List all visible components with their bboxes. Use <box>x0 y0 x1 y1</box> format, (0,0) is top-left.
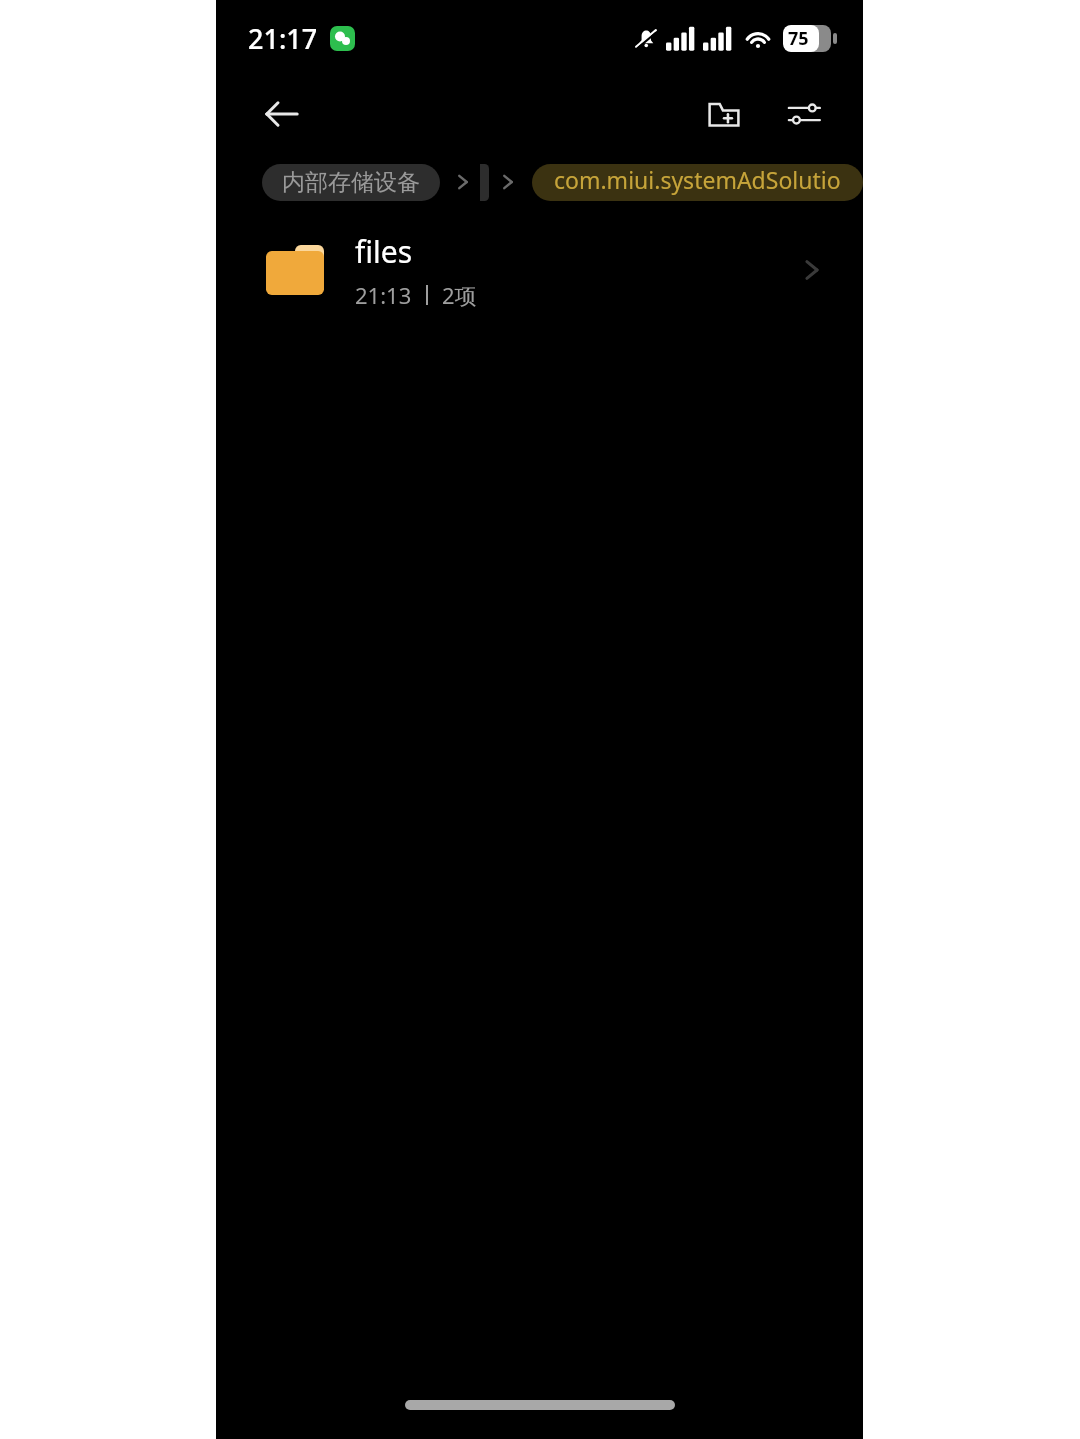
staticText: 75 <box>788 26 809 51</box>
button[interactable]: files <box>216 226 863 314</box>
button[interactable]: Back <box>254 86 310 142</box>
staticText: 21:17 <box>248 20 318 57</box>
button[interactable]: com.miui.systemAdSolution <box>532 164 863 201</box>
staticText: com.miui.systemAdSolution <box>554 164 841 201</box>
staticText: 2项 <box>442 280 477 310</box>
button[interactable]: 内部存储设备 <box>262 164 440 201</box>
button[interactable]: New folder <box>695 85 753 143</box>
staticText: 21:13 <box>355 280 412 310</box>
staticText: 内部存储设备 <box>282 168 420 197</box>
button[interactable]: Sort and view options <box>775 85 833 143</box>
staticText: files <box>355 231 413 272</box>
